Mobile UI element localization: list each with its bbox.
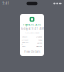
staticText: Account [22, 39, 28, 41]
staticText: Amount [22, 36, 27, 38]
staticText: 9:41 [2, 2, 9, 5]
staticText: Cleared [36, 46, 42, 47]
staticText: Payment Sent [23, 23, 41, 26]
staticText: Transaction complete [24, 32, 39, 34]
staticText: Status [22, 46, 26, 47]
staticText: Today at 9:41 AM [20, 27, 43, 30]
button[interactable]: View Details [20, 49, 44, 54]
staticText: $128.40 [36, 36, 42, 38]
staticText: A91F2 [37, 42, 42, 44]
staticText: Reference [22, 42, 29, 45]
staticText: View Details [24, 50, 40, 53]
staticText: 1234 [38, 39, 42, 41]
